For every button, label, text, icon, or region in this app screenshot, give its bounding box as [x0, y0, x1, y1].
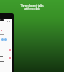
staticText: Three decent talks with no click — [20, 4, 44, 11]
